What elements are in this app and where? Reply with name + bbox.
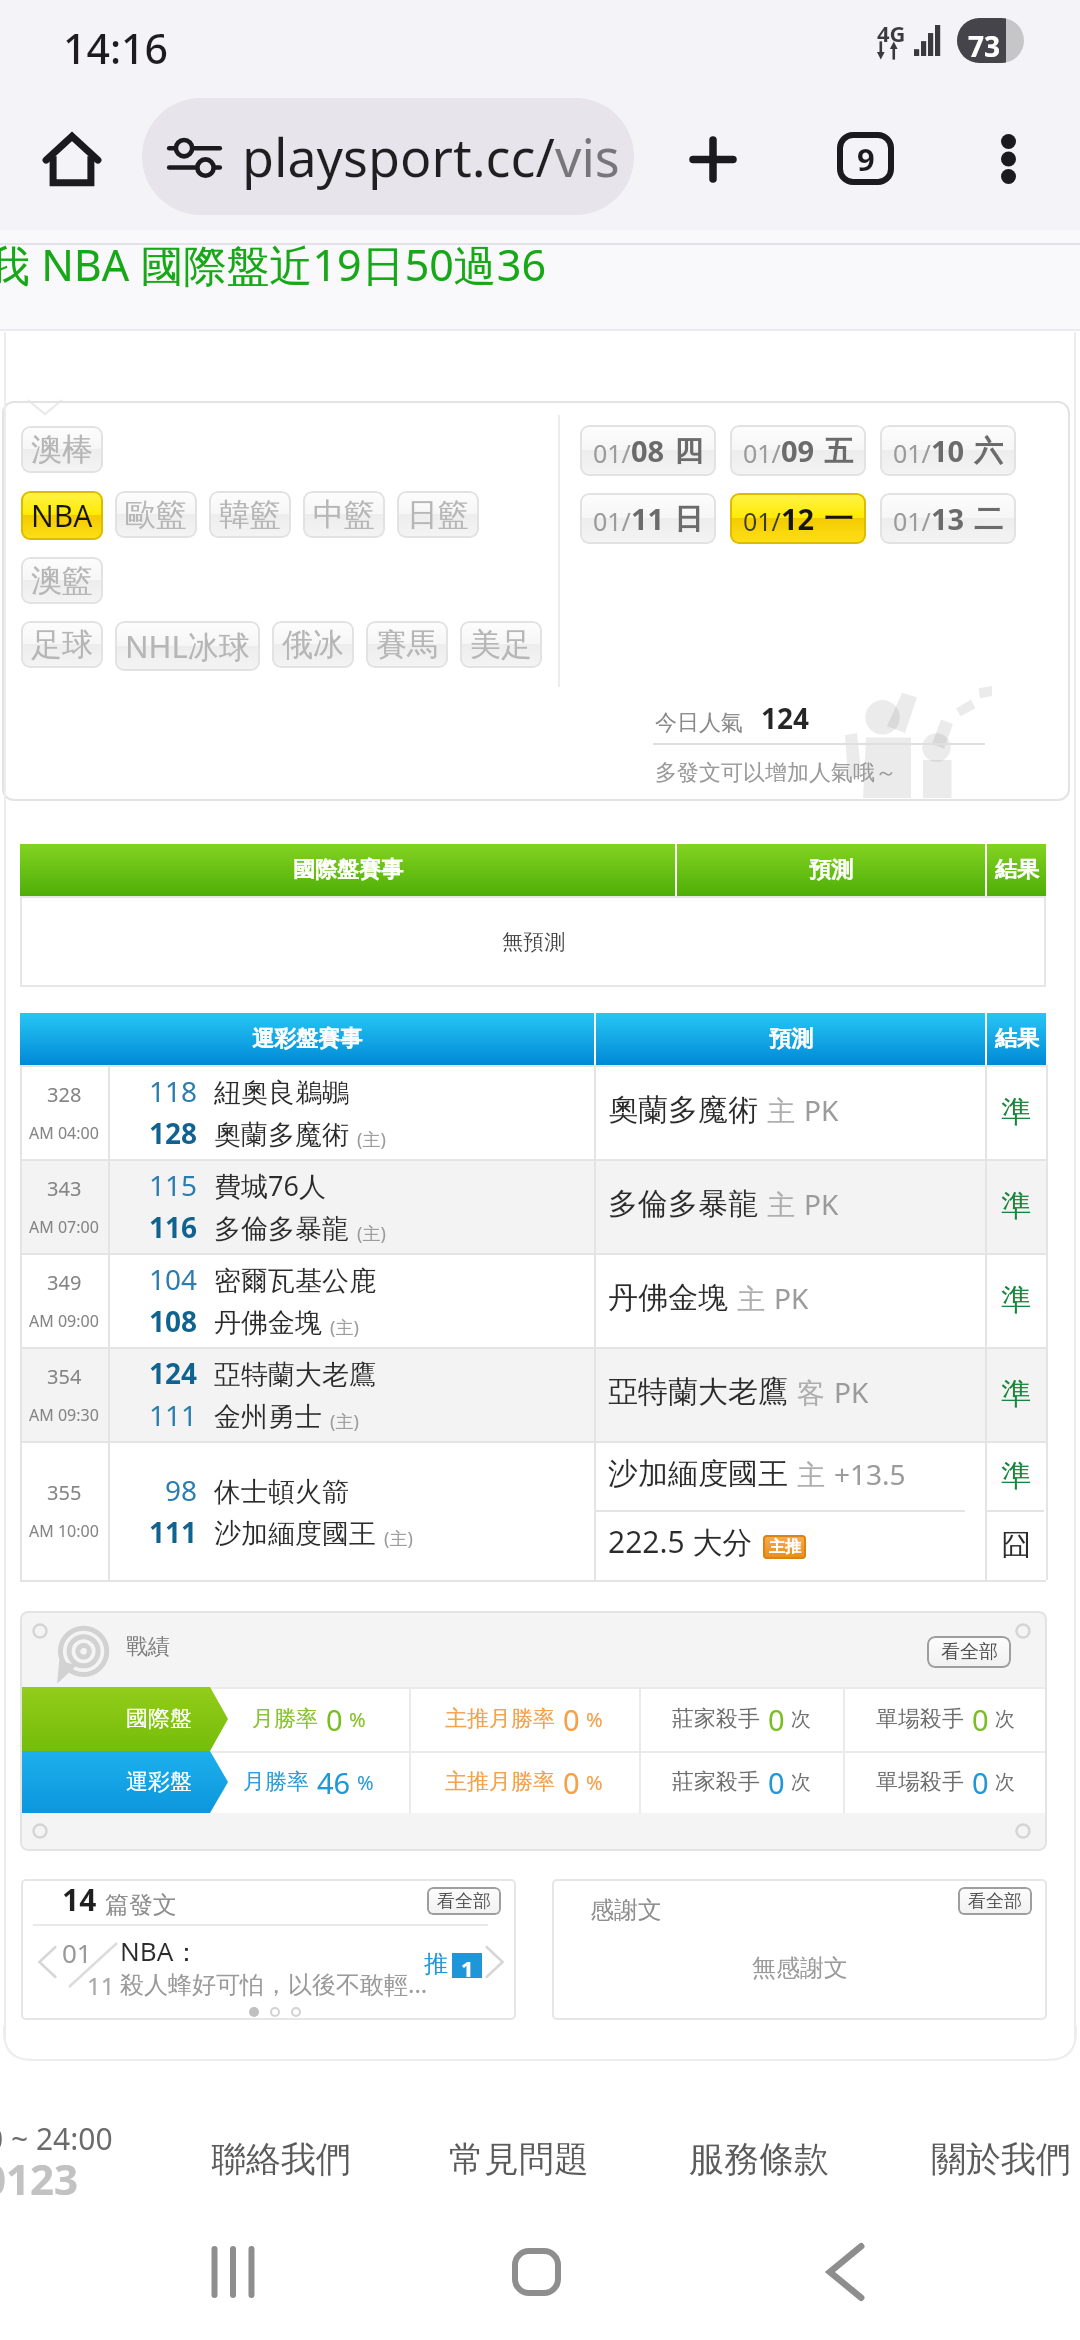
staticText: 次 [995, 1707, 1015, 1732]
staticText: 休士頓火箭 [214, 1475, 349, 1509]
button[interactable]: 01/ [580, 493, 716, 544]
button[interactable]: 澳籃 [21, 557, 103, 604]
button[interactable]: 賽馬 [366, 621, 448, 668]
staticText: 0 [563, 1763, 580, 1802]
button[interactable]: NBA [21, 491, 103, 540]
staticText: 9 [857, 138, 875, 180]
staticText: 看全部 [968, 1890, 1022, 1913]
staticText: 韓籃 [219, 495, 281, 534]
staticText: 0123 [0, 2150, 79, 2207]
staticText: 密爾瓦基公鹿 [214, 1264, 376, 1298]
button[interactable]: Switch tabs [817, 110, 913, 206]
button[interactable]: Home [466, 2226, 606, 2318]
staticText: PK [804, 1185, 839, 1223]
button[interactable]: playsport.cc/ [142, 98, 634, 215]
staticText: 賽馬 [376, 625, 438, 664]
button[interactable]: 349 [20, 1253, 1046, 1347]
button[interactable]: 01/ [880, 493, 1016, 544]
staticText: (主) [330, 1409, 359, 1434]
staticText: 10 [931, 431, 965, 470]
button[interactable]: 01/ [730, 493, 866, 544]
button[interactable]: New tab [665, 112, 761, 206]
staticText: 01/ [593, 436, 631, 470]
staticText: 328 [47, 1081, 82, 1108]
staticText: AM 09:00 [29, 1310, 99, 1332]
staticText: 104 [149, 1260, 198, 1298]
button[interactable]: 服務條款 [689, 2137, 829, 2181]
staticText: 結果 [995, 856, 1039, 884]
button[interactable]: 01/ [730, 425, 866, 476]
button[interactable]: 中籃 [303, 491, 385, 538]
button[interactable]: 看全部 [427, 1887, 501, 1915]
staticText: 感謝文 [590, 1895, 662, 1925]
staticText: PK [774, 1279, 809, 1317]
staticText: 無預測 [502, 929, 565, 955]
button[interactable]: 354 [20, 1347, 1046, 1441]
button[interactable]: NHL冰球 [115, 621, 260, 671]
staticText: 124 [149, 1354, 198, 1392]
staticText: 01/ [593, 504, 631, 538]
staticText: 日籃 [407, 495, 469, 534]
staticText: AM 07:00 [29, 1216, 99, 1238]
staticText: % [349, 1706, 366, 1733]
staticText: 二 [974, 501, 1003, 538]
staticText: 我 NBA 國際盤近19日50過36 [0, 235, 547, 294]
button[interactable]: Home [27, 114, 117, 204]
button[interactable]: 俄冰 [272, 621, 354, 668]
staticText: 一 [824, 501, 853, 538]
button[interactable]: 澳棒 [21, 426, 103, 473]
staticText: 無感謝文 [752, 1953, 848, 1983]
staticText: 準 [1001, 1375, 1031, 1413]
staticText: 亞特蘭大老鷹 [608, 1373, 788, 1411]
staticText: 囧 [1001, 1526, 1031, 1564]
staticText: 澳棒 [31, 430, 93, 469]
button[interactable]: 足球 [21, 621, 103, 668]
staticText: 14 [62, 1879, 97, 1920]
button[interactable]: 看全部 [958, 1887, 1032, 1915]
staticText: (主) [330, 1315, 359, 1340]
button[interactable]: 01/ [580, 425, 716, 476]
staticText: 111 [149, 1396, 198, 1434]
staticText: 聯絡我們 [211, 2137, 351, 2181]
staticText: 09 [781, 431, 815, 470]
staticText: 46 [317, 1763, 351, 1802]
button[interactable]: Recent apps [163, 2226, 303, 2318]
staticText: 118 [149, 1072, 198, 1110]
staticText: 歐籃 [125, 495, 187, 534]
button[interactable]: 01/ [880, 425, 1016, 476]
button[interactable]: 328 [20, 1065, 1046, 1159]
staticText: 中籃 [313, 495, 375, 534]
staticText: 多發文可以增加人氣哦～ [655, 759, 897, 787]
button[interactable]: 日籃 [397, 491, 479, 538]
staticText: 關於我們 [931, 2137, 1071, 2181]
button[interactable]: More options [960, 111, 1056, 207]
staticText: 亞特蘭大老鷹 [214, 1358, 376, 1392]
button[interactable]: 343 [20, 1159, 1046, 1253]
staticText: 月勝率 [252, 1705, 318, 1733]
staticText: vis [555, 121, 620, 192]
staticText: 355 [47, 1479, 82, 1506]
staticText: 日 [674, 501, 703, 538]
staticText: 01/ [743, 504, 781, 538]
staticText: 服務條款 [689, 2137, 829, 2181]
staticText: 足球 [31, 625, 93, 664]
staticText: 主 [767, 1188, 795, 1223]
staticText: 主推 [769, 1537, 801, 1557]
button[interactable]: 歐籃 [115, 491, 197, 538]
staticText: AM 10:00 [29, 1520, 99, 1542]
button[interactable]: 常見問題 [449, 2137, 589, 2181]
button[interactable]: 355 [20, 1441, 1046, 1580]
staticText: 今日人氣 [655, 709, 743, 737]
staticText: 13 [931, 499, 965, 538]
button[interactable]: Back [775, 2226, 915, 2318]
staticText: 篇發文 [105, 1890, 177, 1920]
button[interactable]: 聯絡我們 [211, 2137, 351, 2181]
button[interactable]: 美足 [460, 621, 542, 668]
button[interactable]: 看全部 [927, 1636, 1011, 1668]
button[interactable]: 韓籃 [209, 491, 291, 538]
staticText: NBA [31, 495, 93, 536]
staticText: 01/ [893, 436, 931, 470]
staticText: 11 [87, 1969, 115, 2002]
staticText: 0 [563, 1700, 580, 1739]
button[interactable]: 關於我們 [931, 2137, 1071, 2181]
